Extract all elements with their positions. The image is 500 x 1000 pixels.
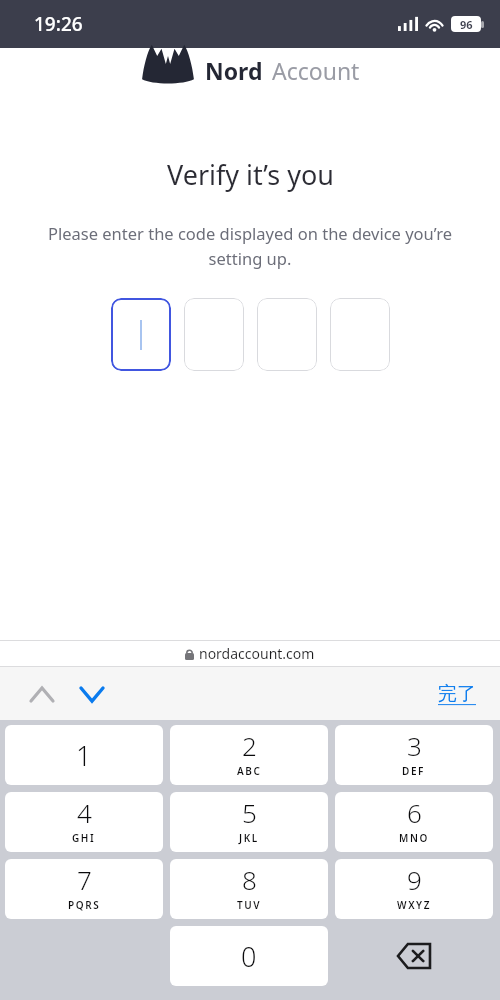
staticText: 96	[460, 17, 473, 32]
staticText: 3	[407, 728, 422, 763]
staticText: 1	[76, 737, 92, 774]
staticText: Account	[272, 55, 360, 86]
button[interactable]: 8	[170, 859, 328, 919]
staticText: 6	[407, 795, 422, 830]
button[interactable]: nordaccount.com	[0, 641, 500, 666]
button[interactable]: Code digit 3	[257, 298, 317, 371]
button[interactable]: 完了	[438, 682, 476, 706]
staticText: 0	[241, 938, 257, 975]
button[interactable]: 9	[335, 859, 493, 919]
button[interactable]: Delete	[335, 926, 493, 986]
staticText: GHI	[72, 831, 96, 845]
staticText: Please enter the code displayed on the d…	[48, 222, 452, 270]
staticText: nordaccount.com	[199, 644, 315, 663]
staticText: 2	[242, 728, 257, 763]
staticText: WXYZ	[397, 898, 432, 912]
button[interactable]: Next field	[72, 674, 112, 714]
button[interactable]: 2	[170, 725, 328, 785]
staticText: DEF	[402, 764, 426, 778]
staticText: 完了	[438, 682, 476, 706]
staticText: Verify it’s you	[167, 156, 334, 193]
button[interactable]: 4	[5, 792, 163, 852]
staticText: ABC	[237, 764, 262, 778]
staticText: 8	[242, 862, 257, 897]
staticText: 5	[242, 795, 257, 830]
button[interactable]: 3	[335, 725, 493, 785]
button[interactable]: 7	[5, 859, 163, 919]
staticText: 4	[77, 795, 92, 830]
button[interactable]: Code digit 4	[330, 298, 390, 371]
staticText: 9	[407, 862, 422, 897]
staticText: MNO	[399, 831, 429, 845]
button[interactable]: 5	[170, 792, 328, 852]
staticText: JKL	[239, 831, 259, 845]
staticText: 19:26	[34, 11, 83, 37]
button[interactable]: 0	[170, 926, 328, 986]
staticText: TUV	[237, 898, 262, 912]
button[interactable]: 1	[5, 725, 163, 785]
button[interactable]: 6	[335, 792, 493, 852]
button[interactable]: Previous field	[22, 674, 62, 714]
staticText: Nord	[205, 55, 263, 86]
staticText: PQRS	[68, 898, 101, 912]
staticText: 7	[77, 862, 92, 897]
button[interactable]: Code digit 2	[184, 298, 244, 371]
button[interactable]: Code digit 1	[111, 298, 171, 371]
